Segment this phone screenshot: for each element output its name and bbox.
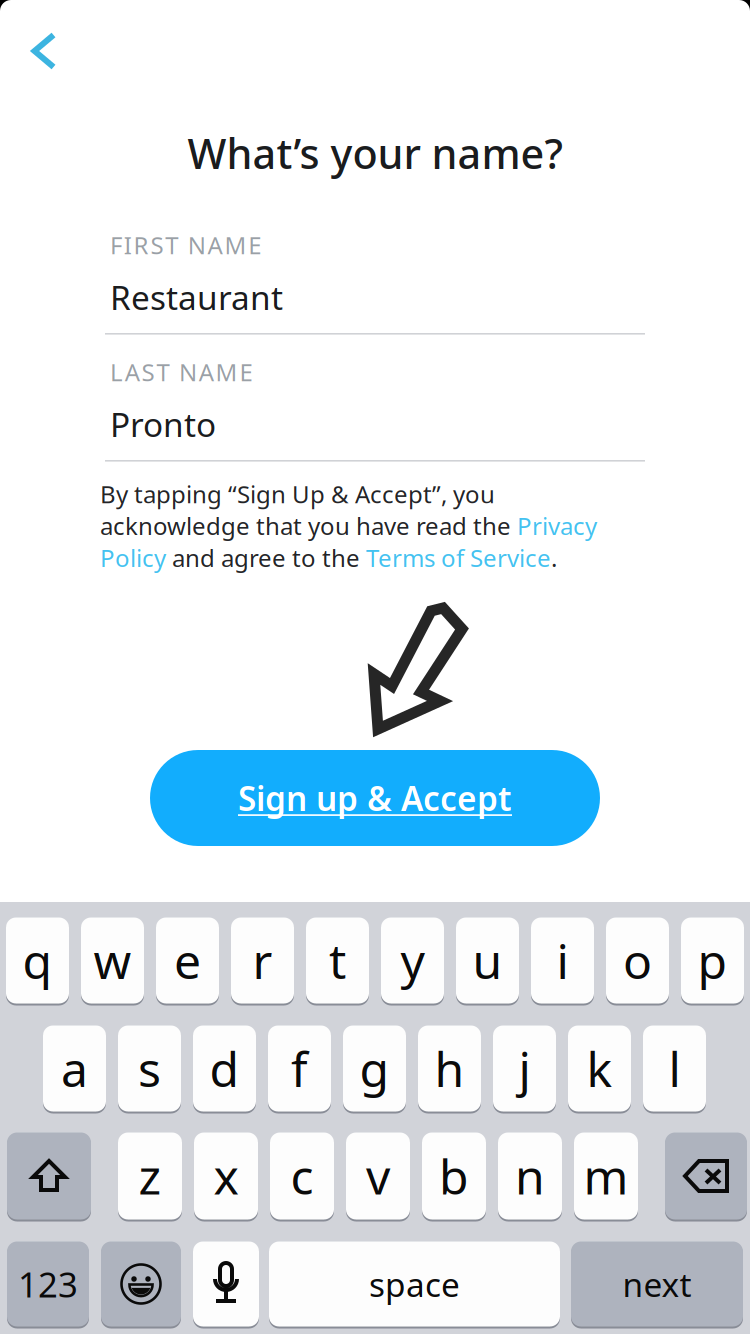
button[interactable]: p (681, 916, 744, 1005)
staticText: By tapping “Sign Up & Accept”, you (100, 478, 495, 510)
button[interactable]: c (270, 1131, 334, 1221)
button[interactable]: k (568, 1024, 631, 1113)
button[interactable]: y (381, 916, 444, 1005)
staticText: acknowledge that you have read the Priva… (100, 510, 597, 542)
button[interactable]: r (231, 916, 294, 1005)
button[interactable]: Numbers (7, 1240, 89, 1328)
staticText: u (472, 929, 502, 992)
button[interactable]: Shift (7, 1131, 91, 1221)
staticText: k (586, 1037, 612, 1100)
button[interactable]: v (346, 1131, 410, 1221)
staticText: g (359, 1037, 389, 1100)
button[interactable]: i (531, 916, 594, 1005)
button[interactable]: s (118, 1024, 181, 1113)
staticText: o (623, 929, 652, 992)
staticText: 123 (18, 1261, 78, 1307)
button[interactable]: f (268, 1024, 331, 1113)
button[interactable]: n (498, 1131, 562, 1221)
button[interactable]: a (43, 1024, 106, 1113)
staticText: c (290, 1144, 313, 1208)
staticText: space (369, 1262, 460, 1306)
staticText: v (366, 1144, 390, 1208)
staticText: l (668, 1037, 680, 1100)
staticText: next (622, 1262, 691, 1306)
button[interactable]: Sign up & Accept (150, 750, 600, 846)
button[interactable]: Delete (665, 1131, 747, 1221)
button[interactable]: e (156, 916, 219, 1005)
staticText: FIRST NAME (110, 229, 261, 261)
staticText: t (329, 929, 346, 992)
button[interactable]: Back (8, 15, 80, 87)
button[interactable]: b (422, 1131, 486, 1221)
staticText: i (556, 929, 568, 992)
staticText: j (518, 1037, 530, 1100)
button[interactable]: g (343, 1024, 406, 1113)
staticText: e (174, 929, 201, 992)
staticText: s (138, 1037, 161, 1100)
button[interactable]: m (574, 1131, 638, 1221)
button[interactable]: q (6, 916, 69, 1005)
staticText: Sign up & Accept (238, 776, 512, 820)
staticText: d (209, 1037, 239, 1100)
staticText: a (61, 1037, 88, 1100)
button[interactable]: Dictate (193, 1240, 259, 1328)
button[interactable]: j (493, 1024, 556, 1113)
staticText: x (213, 1144, 238, 1208)
button[interactable]: o (606, 916, 669, 1005)
staticText: LAST NAME (110, 356, 252, 388)
button[interactable]: z (118, 1131, 182, 1221)
button[interactable]: h (418, 1024, 481, 1113)
button[interactable]: d (193, 1024, 256, 1113)
staticText: b (439, 1144, 469, 1208)
staticText: q (22, 929, 52, 992)
staticText: f (291, 1037, 308, 1100)
staticText: Policy and agree to the Terms of Service… (100, 542, 557, 574)
staticText: Restaurant (110, 275, 283, 319)
button[interactable]: w (81, 916, 144, 1005)
staticText: w (93, 929, 131, 992)
button[interactable]: x (194, 1131, 258, 1221)
staticText: What’s your name? (187, 126, 562, 180)
button[interactable]: t (306, 916, 369, 1005)
button[interactable]: u (456, 916, 519, 1005)
staticText: n (515, 1144, 545, 1208)
staticText: p (697, 929, 727, 992)
staticText: Pronto (110, 402, 216, 446)
staticText: y (400, 929, 424, 992)
staticText: m (583, 1144, 628, 1208)
staticText: r (252, 929, 272, 992)
button[interactable]: l (643, 1024, 706, 1113)
button[interactable]: space (269, 1240, 560, 1328)
staticText: z (138, 1144, 161, 1208)
button[interactable]: Emoji (101, 1240, 181, 1328)
button[interactable]: next (571, 1240, 743, 1328)
staticText: h (434, 1037, 464, 1100)
